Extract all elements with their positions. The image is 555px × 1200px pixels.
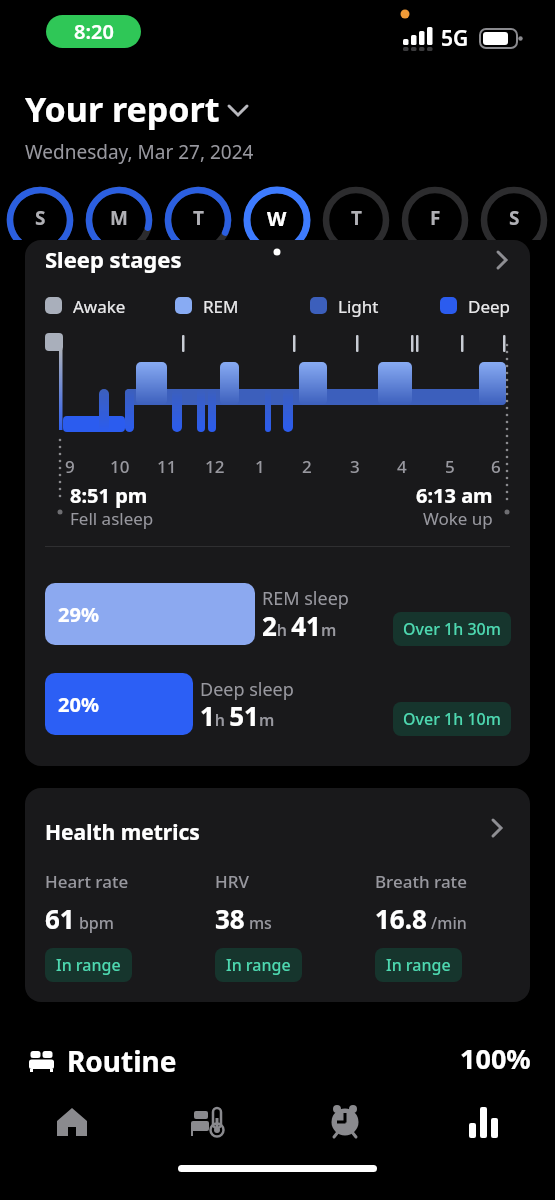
button[interactable]: M: [99, 203, 139, 233]
staticText: In range: [226, 954, 291, 976]
button[interactable]: [462, 1100, 506, 1144]
staticText: 12: [205, 455, 225, 478]
button[interactable]: Routine: [0, 0, 110, 38]
button[interactable]: W: [257, 203, 297, 233]
button[interactable]: In range: [386, 954, 451, 976]
staticText: REM sleep: [262, 586, 349, 611]
staticText: Sleep stages: [45, 244, 182, 274]
staticText: 5: [445, 455, 455, 478]
staticText: Wednesday, Mar 27, 2024: [25, 139, 254, 165]
staticText: 4: [397, 455, 407, 478]
staticText: 2h 41m: [262, 608, 337, 643]
button[interactable]: T: [178, 203, 218, 233]
staticText: Health metrics: [45, 818, 200, 847]
staticText: HRV: [215, 870, 249, 893]
staticText: 11: [157, 455, 177, 478]
staticText: 3: [350, 455, 360, 478]
staticText: Woke up: [423, 507, 493, 530]
button[interactable]: Health metrics: [25, 788, 530, 1002]
staticText: 20%: [58, 691, 99, 718]
button[interactable]: T: [336, 203, 376, 233]
staticText: Light: [338, 295, 379, 318]
button[interactable]: Over 1h 10m: [403, 708, 501, 730]
staticText: 38 ms: [215, 901, 272, 936]
button[interactable]: Over 1h 30m: [403, 618, 501, 640]
staticText: Breath rate: [375, 870, 467, 893]
staticText: 1h 51m: [200, 698, 275, 733]
staticText: T: [351, 205, 362, 231]
staticText: T: [193, 205, 204, 231]
staticText: S: [35, 205, 46, 231]
staticText: In range: [56, 954, 121, 976]
button[interactable]: In range: [56, 954, 121, 976]
staticText: 100%: [460, 1040, 531, 1077]
staticText: S: [509, 205, 520, 231]
staticText: 1: [255, 455, 265, 478]
staticText: 6: [491, 455, 501, 478]
staticText: 16.8 /min: [375, 901, 467, 936]
button[interactable]: [186, 1100, 230, 1144]
staticText: 8:51 pm: [70, 482, 148, 509]
staticText: Your report: [25, 86, 220, 132]
staticText: Fell asleep: [70, 507, 154, 530]
staticText: 5G: [441, 24, 469, 53]
button[interactable]: F: [415, 203, 455, 233]
staticText: 8:20: [74, 18, 114, 45]
staticText: Heart rate: [45, 870, 129, 893]
staticText: 9: [65, 455, 75, 478]
staticText: 2: [302, 455, 312, 478]
button[interactable]: [50, 1100, 94, 1144]
staticText: 29%: [58, 601, 99, 628]
staticText: In range: [386, 954, 451, 976]
staticText: Deep sleep: [200, 677, 294, 702]
staticText: 61 bpm: [45, 901, 114, 936]
staticText: REM: [203, 295, 239, 318]
staticText: M: [110, 205, 128, 231]
button[interactable]: S: [494, 203, 534, 233]
button[interactable]: 29%: [45, 583, 255, 645]
staticText: Awake: [73, 295, 126, 318]
button[interactable]: In range: [226, 954, 291, 976]
button[interactable]: 20%: [45, 673, 193, 735]
staticText: Deep: [468, 295, 511, 318]
staticText: W: [267, 205, 287, 232]
staticText: Over 1h 10m: [403, 708, 501, 730]
staticText: 6:13 am: [416, 482, 493, 509]
button[interactable]: S: [20, 203, 60, 233]
button[interactable]: 8:20: [46, 15, 141, 48]
staticText: 10: [110, 455, 130, 478]
button[interactable]: Sleep stages: [25, 240, 530, 766]
staticText: Over 1h 30m: [403, 618, 501, 640]
button[interactable]: [323, 1098, 367, 1144]
staticText: F: [430, 205, 441, 231]
